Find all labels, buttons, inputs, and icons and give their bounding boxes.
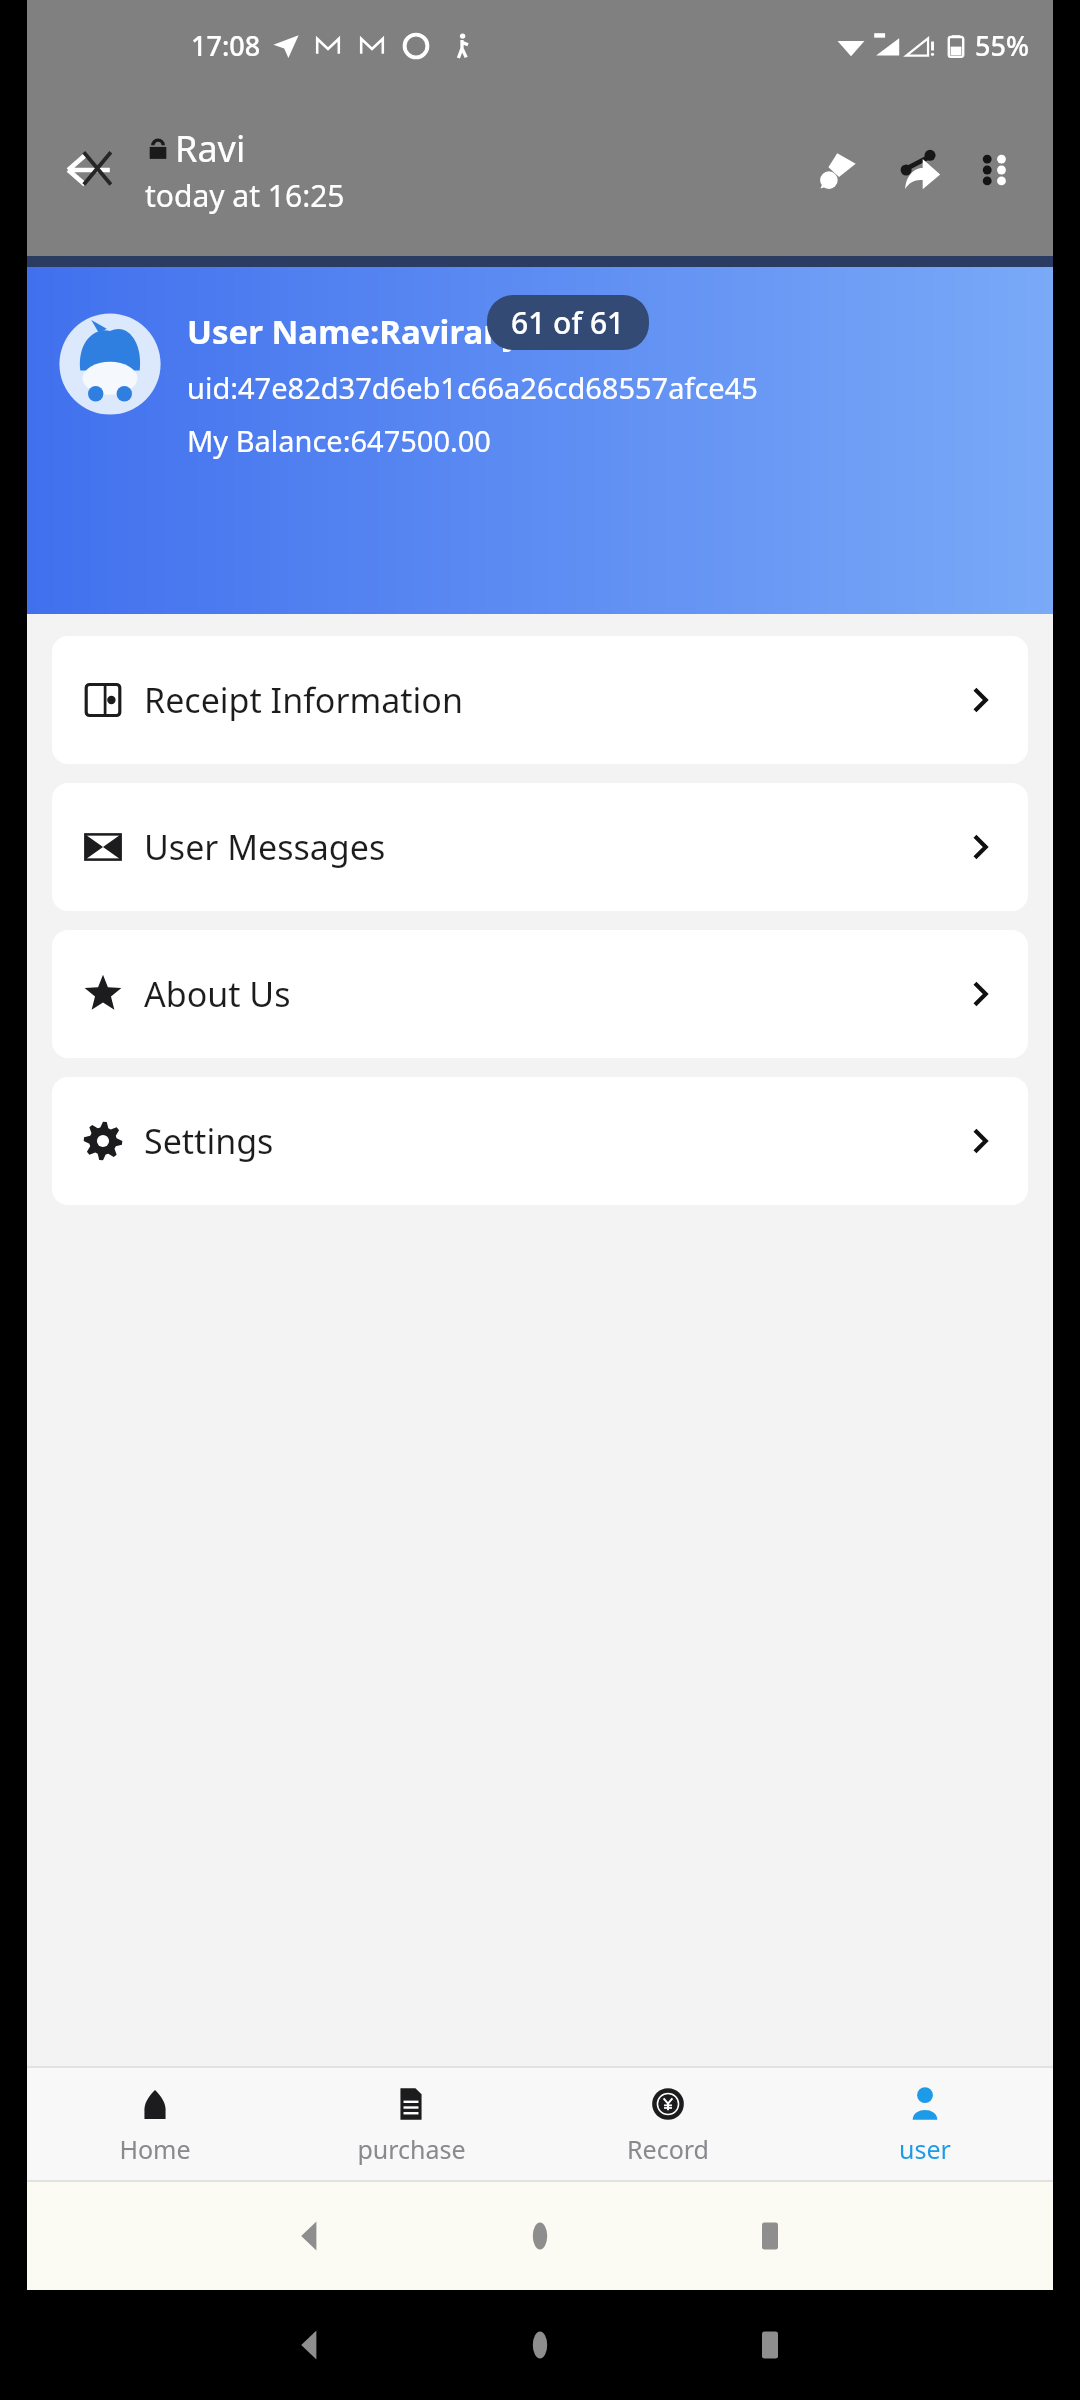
button[interactable]: Home xyxy=(27,2068,283,2180)
button[interactable]: Share xyxy=(879,130,959,210)
button[interactable]: Record xyxy=(539,2068,796,2180)
button[interactable]: More options xyxy=(959,135,1029,205)
button[interactable]: Recents xyxy=(655,2196,885,2276)
staticText: 17:08 xyxy=(191,27,261,64)
staticText: Settings xyxy=(144,1118,274,1164)
button[interactable]: Home xyxy=(425,2305,655,2385)
staticText: 61 of 61 xyxy=(511,302,625,343)
button[interactable]: user xyxy=(796,2068,1053,2180)
staticText: uid:47e82d37d6eb1c66a26cd68557afce45 xyxy=(187,368,758,407)
button[interactable]: Home xyxy=(425,2196,655,2276)
staticText: My Balance:647500.00 xyxy=(187,421,491,460)
staticText: About Us xyxy=(144,971,291,1017)
staticText: 55% xyxy=(975,27,1029,64)
staticText: Home xyxy=(119,2132,191,2166)
button[interactable]: User Messages xyxy=(52,783,1028,911)
button[interactable]: Markup xyxy=(799,130,879,210)
staticText: purchase xyxy=(357,2132,466,2166)
button[interactable]: purchase xyxy=(283,2068,539,2180)
staticText: today at 16:25 xyxy=(145,175,345,216)
staticText: Receipt Information xyxy=(144,677,463,723)
staticText: Ravi xyxy=(175,124,246,173)
button[interactable]: About Us xyxy=(52,930,1028,1058)
button[interactable]: Back xyxy=(195,2305,425,2385)
button[interactable]: Back xyxy=(51,132,127,208)
staticText: Record xyxy=(627,2132,709,2166)
button[interactable]: Recents xyxy=(655,2305,885,2385)
button[interactable]: Receipt Information xyxy=(52,636,1028,764)
staticText: user xyxy=(899,2132,951,2166)
staticText: User Messages xyxy=(144,824,386,870)
staticText: User Name:Raviranjan xyxy=(187,309,556,354)
button[interactable]: Settings xyxy=(52,1077,1028,1205)
button[interactable]: Back xyxy=(195,2196,425,2276)
